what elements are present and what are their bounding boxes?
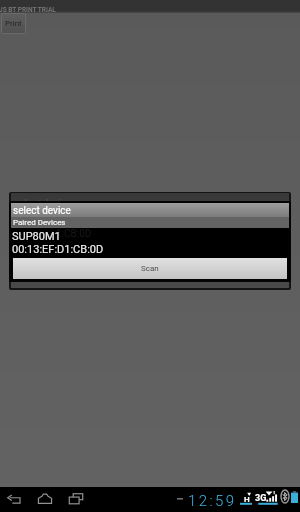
staticText: Scan: [141, 264, 159, 273]
staticText: 3G: [255, 493, 267, 504]
staticText: 1:CB:0D: [56, 228, 92, 240]
staticText: select device: [14, 198, 72, 210]
button[interactable]: Back: [7, 496, 21, 504]
button[interactable]: Recent apps: [69, 493, 83, 505]
staticText: 12:59: [188, 492, 237, 510]
button[interactable]: Scan: [13, 258, 287, 279]
staticText: JS BT PRINT TRIAL: [0, 6, 56, 14]
staticText: Paired Devices: [13, 218, 66, 227]
staticText: H: [244, 495, 250, 504]
staticText: Print: [5, 19, 22, 28]
staticText: select device: [13, 205, 71, 217]
button[interactable]: 1:CB:0D: [11, 228, 289, 258]
button[interactable]: Status and notifications: [170, 487, 300, 512]
staticText: SUP80M1: [12, 230, 61, 243]
staticText: 00:13:EF:D1:CB:0D: [12, 243, 104, 256]
button[interactable]: Home: [38, 493, 52, 505]
button[interactable]: Print: [2, 14, 25, 33]
